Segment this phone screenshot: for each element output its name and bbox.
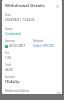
staticText: 45.00 USDT [9,44,26,48]
staticText: Network [33,39,44,43]
staticText: Status [5,27,13,31]
button[interactable]: Close [54,3,60,9]
other: Copy address [56,92,60,94]
staticText: Withdrawal Details [5,3,54,9]
staticText: Fee [5,51,10,55]
staticText: 1.00 [5,56,11,60]
staticText: Account [5,75,15,79]
staticText: Amount [5,39,15,43]
staticText: 2024/08/21 12:42:05 [5,18,35,22]
staticText: Withdrawal Address [5,89,30,93]
staticText: 46.00 [5,68,13,72]
staticText: Date [5,13,11,17]
button[interactable]: Withdrawal Address [2,89,62,94]
staticText: Completed [5,32,21,36]
staticText: TKn8x2Lp [5,80,20,84]
staticText: Total [5,63,11,67]
staticText: Tether (TRC20) [33,44,54,48]
